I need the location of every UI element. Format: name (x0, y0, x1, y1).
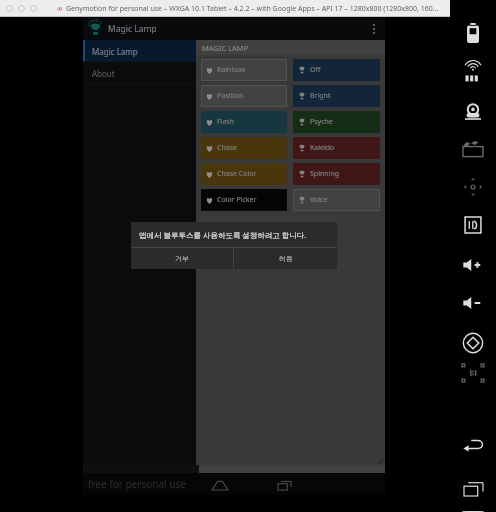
staticText: free for personal use (88, 477, 186, 491)
button[interactable]: Rotate (453, 330, 493, 356)
button[interactable]: Scale 1:1 (453, 360, 493, 386)
button[interactable]: Home (210, 479, 230, 491)
staticText: 허용 (279, 254, 293, 263)
button[interactable]: Volume down (453, 290, 493, 316)
staticText: Voice (310, 195, 328, 205)
button[interactable]: Window control (18, 5, 25, 12)
button[interactable]: Rainbow (201, 59, 287, 81)
button[interactable]: Battery (453, 20, 493, 46)
staticText: Kaleido (310, 143, 335, 153)
button[interactable]: About (83, 62, 196, 84)
button[interactable]: 거부 (131, 248, 233, 269)
staticText: Genymotion for personal use – WXGA 10.1 … (66, 4, 439, 14)
button[interactable]: 허용 (234, 248, 337, 269)
button[interactable]: Window control (6, 5, 13, 12)
button[interactable]: Identifiers (453, 212, 493, 238)
button[interactable]: Bright (293, 85, 380, 107)
button[interactable]: Voice (293, 189, 380, 211)
staticText: Magic Lamp (92, 46, 138, 57)
staticText: Psyche (310, 117, 333, 127)
button[interactable]: Volume up (453, 252, 493, 278)
staticText: Off (310, 65, 321, 75)
staticText: Color Picker (217, 195, 257, 205)
button[interactable]: Window control (30, 5, 37, 12)
staticText: Magic Lamp (108, 23, 157, 35)
staticText: Bright (310, 91, 331, 101)
button[interactable]: Recents (274, 479, 294, 491)
staticText: Flash (217, 117, 235, 127)
button[interactable]: Kaleido (293, 137, 380, 159)
staticText: ∞ (57, 5, 63, 13)
button[interactable]: Chase (201, 137, 287, 159)
button[interactable]: Magic Lamp (83, 40, 196, 62)
staticText: Rainbow (217, 65, 246, 75)
button[interactable]: Psyche (293, 111, 380, 133)
button[interactable]: Spinning (293, 163, 380, 185)
button[interactable]: Record (453, 136, 493, 162)
staticText: Chase Color (217, 169, 257, 179)
staticText: Spinning (310, 169, 340, 179)
button[interactable]: Camera (453, 98, 493, 124)
button[interactable]: GPS (453, 60, 493, 86)
button[interactable]: Color Picker (201, 189, 287, 211)
button[interactable]: Chase Color (201, 163, 287, 185)
staticText: 앱에서 블루투스를 사용하도록 설정하려고 합니다. (139, 230, 307, 240)
button[interactable]: Off (293, 59, 380, 81)
staticText: Chase (217, 143, 237, 153)
button[interactable]: Flash (201, 111, 287, 133)
button[interactable]: D-pad (453, 174, 493, 200)
staticText: Position (217, 91, 244, 101)
button[interactable]: Recents (453, 476, 493, 502)
staticText: About (92, 68, 115, 79)
button[interactable]: Position (201, 85, 287, 107)
button[interactable]: More options (363, 17, 385, 40)
staticText: MAGIC LAMP (202, 43, 249, 53)
button[interactable]: Back (453, 432, 493, 458)
staticText: 거부 (175, 254, 189, 263)
